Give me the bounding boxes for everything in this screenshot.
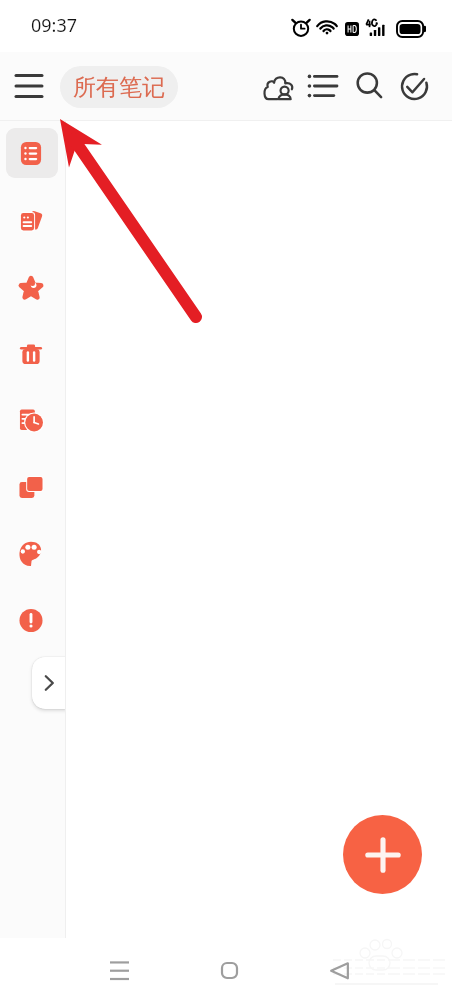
button[interactable]: Expand drawer <box>32 657 66 709</box>
button[interactable]: Menu <box>6 63 52 109</box>
button[interactable]: New note <box>343 815 422 894</box>
button[interactable]: Reminders <box>3 394 59 446</box>
staticText: 所有笔记 <box>73 73 165 102</box>
button[interactable]: Search <box>348 64 392 108</box>
button[interactable]: Back <box>315 946 363 994</box>
button[interactable]: List view <box>300 64 344 108</box>
button[interactable]: All notes <box>3 127 59 179</box>
button[interactable]: Templates <box>3 461 59 513</box>
staticText: 09:37 <box>31 13 78 38</box>
button[interactable]: Note groups <box>3 194 59 246</box>
button[interactable]: Home <box>205 946 253 994</box>
button[interactable]: Select all <box>392 64 436 108</box>
button[interactable]: Themes <box>3 527 59 579</box>
button[interactable]: Notices <box>3 594 59 646</box>
button[interactable]: Favourites <box>3 261 59 313</box>
button[interactable]: Recent apps <box>95 946 143 994</box>
button[interactable]: Cloud account <box>256 66 300 110</box>
button[interactable]: Trash <box>3 328 59 380</box>
button[interactable]: 所有笔记 <box>60 66 178 108</box>
